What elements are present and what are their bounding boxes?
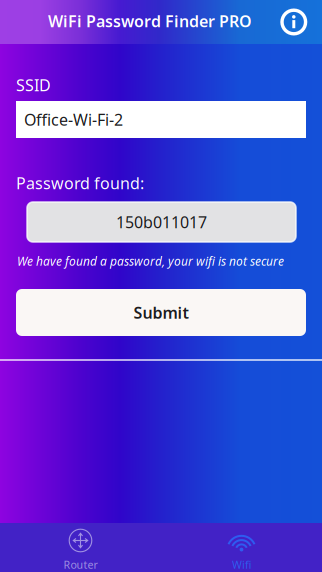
staticText: Office-Wi-Fi-2 [24,109,123,130]
staticText: Wifi [232,557,251,572]
staticText: Submit [133,302,188,323]
staticText: Router [63,557,97,572]
staticText: WiFi Password Finder PRO [48,10,252,32]
staticText: Password found: [16,172,144,194]
staticText: 150b011017 [116,211,207,233]
staticText: SSID [16,74,51,96]
button[interactable]: Info [272,0,315,43]
button[interactable]: Submit [16,289,306,336]
button[interactable]: Router [0,523,161,572]
staticText: We have found a password, your wifi is n… [17,253,284,269]
button[interactable]: Wifi [161,523,322,572]
